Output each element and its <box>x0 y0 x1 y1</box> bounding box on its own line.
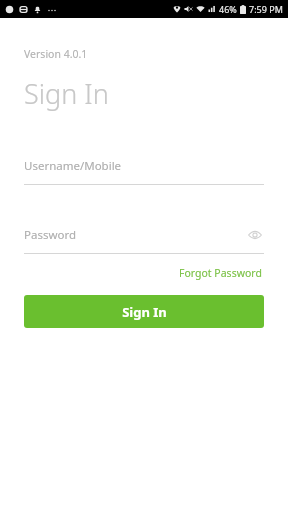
staticText: Forgot Password <box>179 266 262 280</box>
staticText: Username/Mobile <box>24 158 264 174</box>
button[interactable]: Forgot Password <box>177 264 264 282</box>
staticText: Password <box>24 227 246 243</box>
staticText: Sign In <box>24 75 109 112</box>
button[interactable]: Show password <box>246 226 264 244</box>
button[interactable]: Sign In <box>24 295 264 328</box>
staticText: Version 4.0.1 <box>24 47 88 61</box>
button[interactable]: Username/Mobile <box>24 156 264 176</box>
staticText: 46% <box>219 3 237 15</box>
button[interactable]: Password <box>24 225 264 245</box>
staticText: 7:59 PM <box>249 3 283 15</box>
staticText: Sign In <box>122 303 167 321</box>
